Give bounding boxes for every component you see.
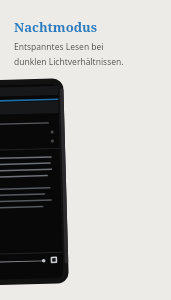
button[interactable]: Tablet im Nachtmodus [0, 78, 69, 287]
staticText: Entspanntes Lesen bei [14, 41, 104, 53]
staticText: Nachtmodus [14, 18, 97, 36]
staticText: dunklen Lichtverhältnissen. [14, 56, 124, 68]
